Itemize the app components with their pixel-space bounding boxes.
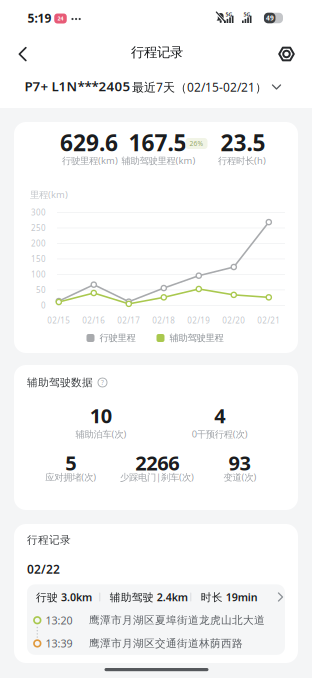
button[interactable]: P7+ L1N***2405 xyxy=(24,77,130,95)
staticText: 行驶里程(km) xyxy=(62,154,118,167)
button[interactable]: Back xyxy=(9,40,37,68)
staticText: 13:20 xyxy=(45,613,72,627)
staticText: 200 xyxy=(31,238,46,249)
staticText: 辅助驾驶里程 xyxy=(169,332,223,344)
staticText: 时长 19min xyxy=(201,590,258,604)
staticText: 50 xyxy=(36,285,46,295)
staticText: 辅助驾驶 2.4km xyxy=(110,590,188,604)
staticText: 167.5 xyxy=(128,127,186,157)
staticText: 02/17 xyxy=(117,315,140,326)
button[interactable]: 最近7天（02/15-02/21） xyxy=(91,79,281,95)
staticText: 辅助泊车(次) xyxy=(75,428,126,440)
staticText: 行程记录 xyxy=(131,44,183,60)
staticText: 里程(km) xyxy=(30,188,68,201)
staticText: 辅助驾驶里程(km) xyxy=(121,154,195,167)
staticText: 93 xyxy=(228,449,250,476)
staticText: 行程时长(h) xyxy=(218,154,266,167)
staticText: 变道(次) xyxy=(223,471,256,483)
staticText: 02/19 xyxy=(187,315,210,326)
staticText: 02/18 xyxy=(152,315,175,326)
staticText: 行驶里程 xyxy=(99,332,135,344)
staticText: 13:39 xyxy=(45,636,72,651)
staticText: P7+ L1N***2405 xyxy=(24,77,130,95)
staticText: 5G xyxy=(225,11,232,18)
staticText: 02/21 xyxy=(257,315,280,326)
staticText: 02/22 xyxy=(27,561,60,577)
staticText: 23.5 xyxy=(220,127,265,157)
staticText: 行程记录 xyxy=(27,533,71,546)
staticText: 49 xyxy=(266,14,274,22)
staticText: 少踩电门|刹车(次) xyxy=(120,471,194,483)
button[interactable]: 13:39 xyxy=(27,635,285,652)
staticText: 0 xyxy=(41,300,46,311)
staticText: 100 xyxy=(31,269,46,280)
staticText: 250 xyxy=(31,223,46,233)
staticText: 辅助驾驶数据 xyxy=(27,376,93,389)
staticText: 629.6 xyxy=(60,127,118,157)
button[interactable]: Info xyxy=(97,377,108,388)
staticText: 24 xyxy=(57,15,63,22)
staticText: ? xyxy=(101,378,104,387)
button[interactable]: 13:20 xyxy=(27,612,285,628)
button[interactable]: 行驶 3.0km xyxy=(27,584,285,611)
button[interactable]: Settings xyxy=(272,40,300,68)
staticText: 5G xyxy=(243,11,250,18)
staticText: 5:19 xyxy=(27,10,51,26)
staticText: 5 xyxy=(65,449,76,476)
staticText: 10 xyxy=(90,402,112,429)
staticText: 2266 xyxy=(135,449,179,476)
staticText: 150 xyxy=(31,254,46,264)
staticText: 02/15 xyxy=(47,315,70,326)
staticText: 02/16 xyxy=(82,315,105,326)
staticText: 应对拥堵(次) xyxy=(45,471,96,483)
staticText: 0干预行程(次) xyxy=(192,428,248,440)
staticText: 26% xyxy=(189,139,203,148)
staticText: 02/20 xyxy=(222,315,245,326)
staticText: 鹰潭市月湖区交通街道林荫西路 xyxy=(89,637,243,650)
staticText: 4 xyxy=(214,402,225,429)
staticText: 鹰潭市月湖区夏埠街道龙虎山北大道 xyxy=(89,614,265,627)
staticText: 300 xyxy=(31,207,46,218)
staticText: 最近7天（02/15-02/21） xyxy=(132,79,267,95)
staticText: 行驶 3.0km xyxy=(36,590,92,604)
